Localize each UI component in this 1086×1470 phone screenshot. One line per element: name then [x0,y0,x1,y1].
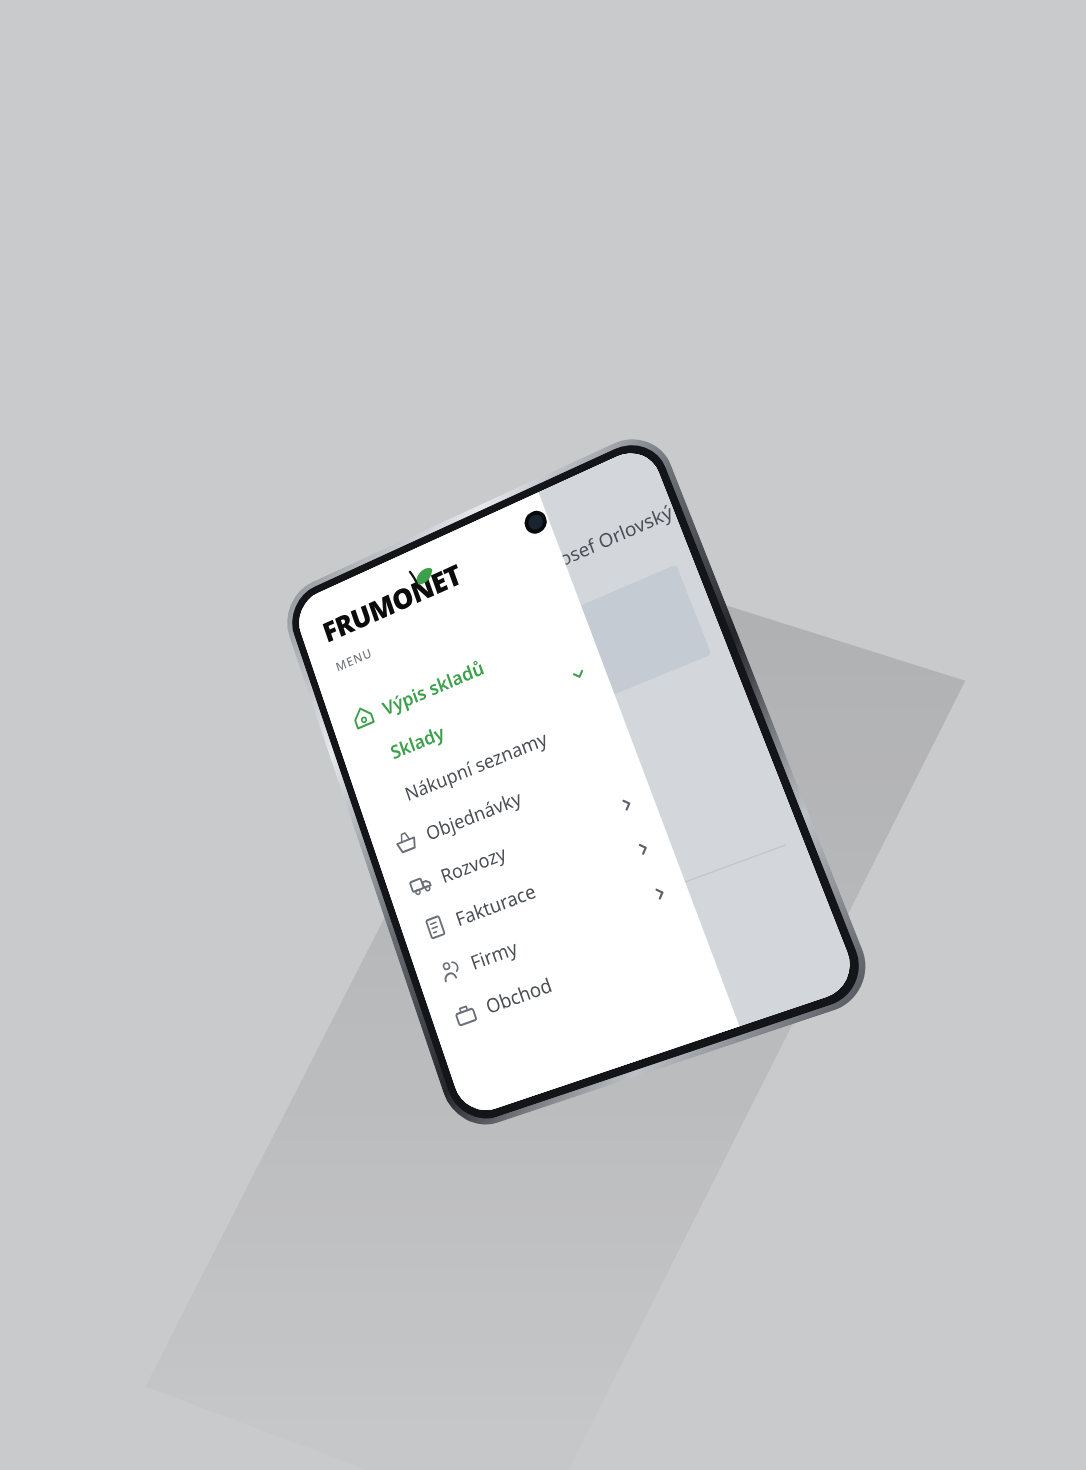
staticText: Sklady [387,719,448,765]
staticText: Nákupní seznamy [401,725,551,807]
staticText: Josef Orlovský [551,498,676,574]
staticText: Selský borůvkový jogurt [426,864,629,961]
button[interactable]: Fakturace [397,817,677,960]
staticText: Obchod [482,971,555,1020]
button[interactable]: Výpis skladů [327,601,595,750]
staticText: Rozvozy [437,839,510,889]
staticText: Objednávky [422,784,525,846]
staticText: MENU [333,644,374,675]
button[interactable]: Sklady [341,643,611,791]
staticText: Fakturace [452,877,539,932]
staticText: Firmy [467,934,521,976]
button[interactable]: Obchod [427,906,711,1047]
button[interactable]: Rozvozy [383,773,661,917]
staticText: Výpis skladů [379,655,487,721]
button[interactable]: Objednávky [369,729,644,875]
staticText: FRUMONET [318,555,466,650]
button[interactable]: Firmy [412,861,694,1004]
staticText: Bílý jogurt bez [443,945,568,1012]
button[interactable]: FRUMONET [317,554,466,651]
button[interactable]: Nákupní seznamy [355,686,627,833]
